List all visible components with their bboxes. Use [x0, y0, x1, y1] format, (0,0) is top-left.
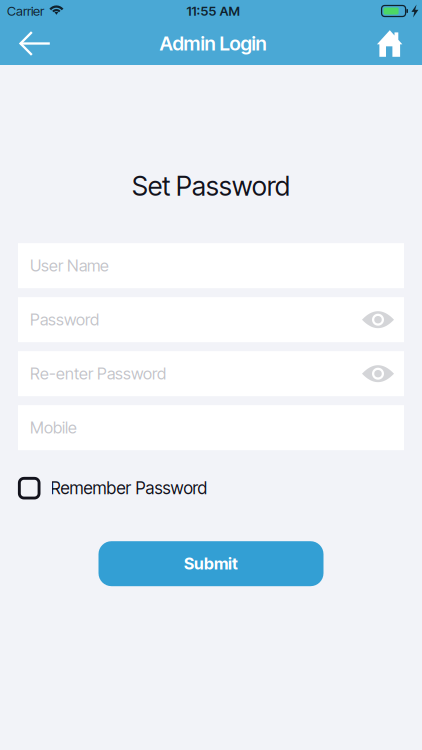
button[interactable]: Remember Password: [0, 475, 422, 501]
staticText: User Name: [30, 256, 109, 275]
staticText: Set Password: [132, 170, 290, 202]
button[interactable]: Back: [9, 22, 61, 65]
button[interactable]: Show password: [362, 365, 394, 383]
button[interactable]: Home: [364, 22, 416, 65]
staticText: Admin Login: [159, 32, 266, 55]
button[interactable]: Submit: [98, 541, 323, 586]
staticText: Re-enter Password: [30, 364, 166, 383]
staticText: Carrier: [7, 3, 44, 19]
staticText: Remember Password: [50, 478, 207, 498]
button[interactable]: Show password: [362, 311, 394, 329]
staticText: Mobile: [30, 418, 77, 437]
staticText: 11:55 AM: [186, 3, 239, 19]
staticText: Submit: [184, 554, 238, 573]
staticText: Password: [30, 310, 99, 329]
